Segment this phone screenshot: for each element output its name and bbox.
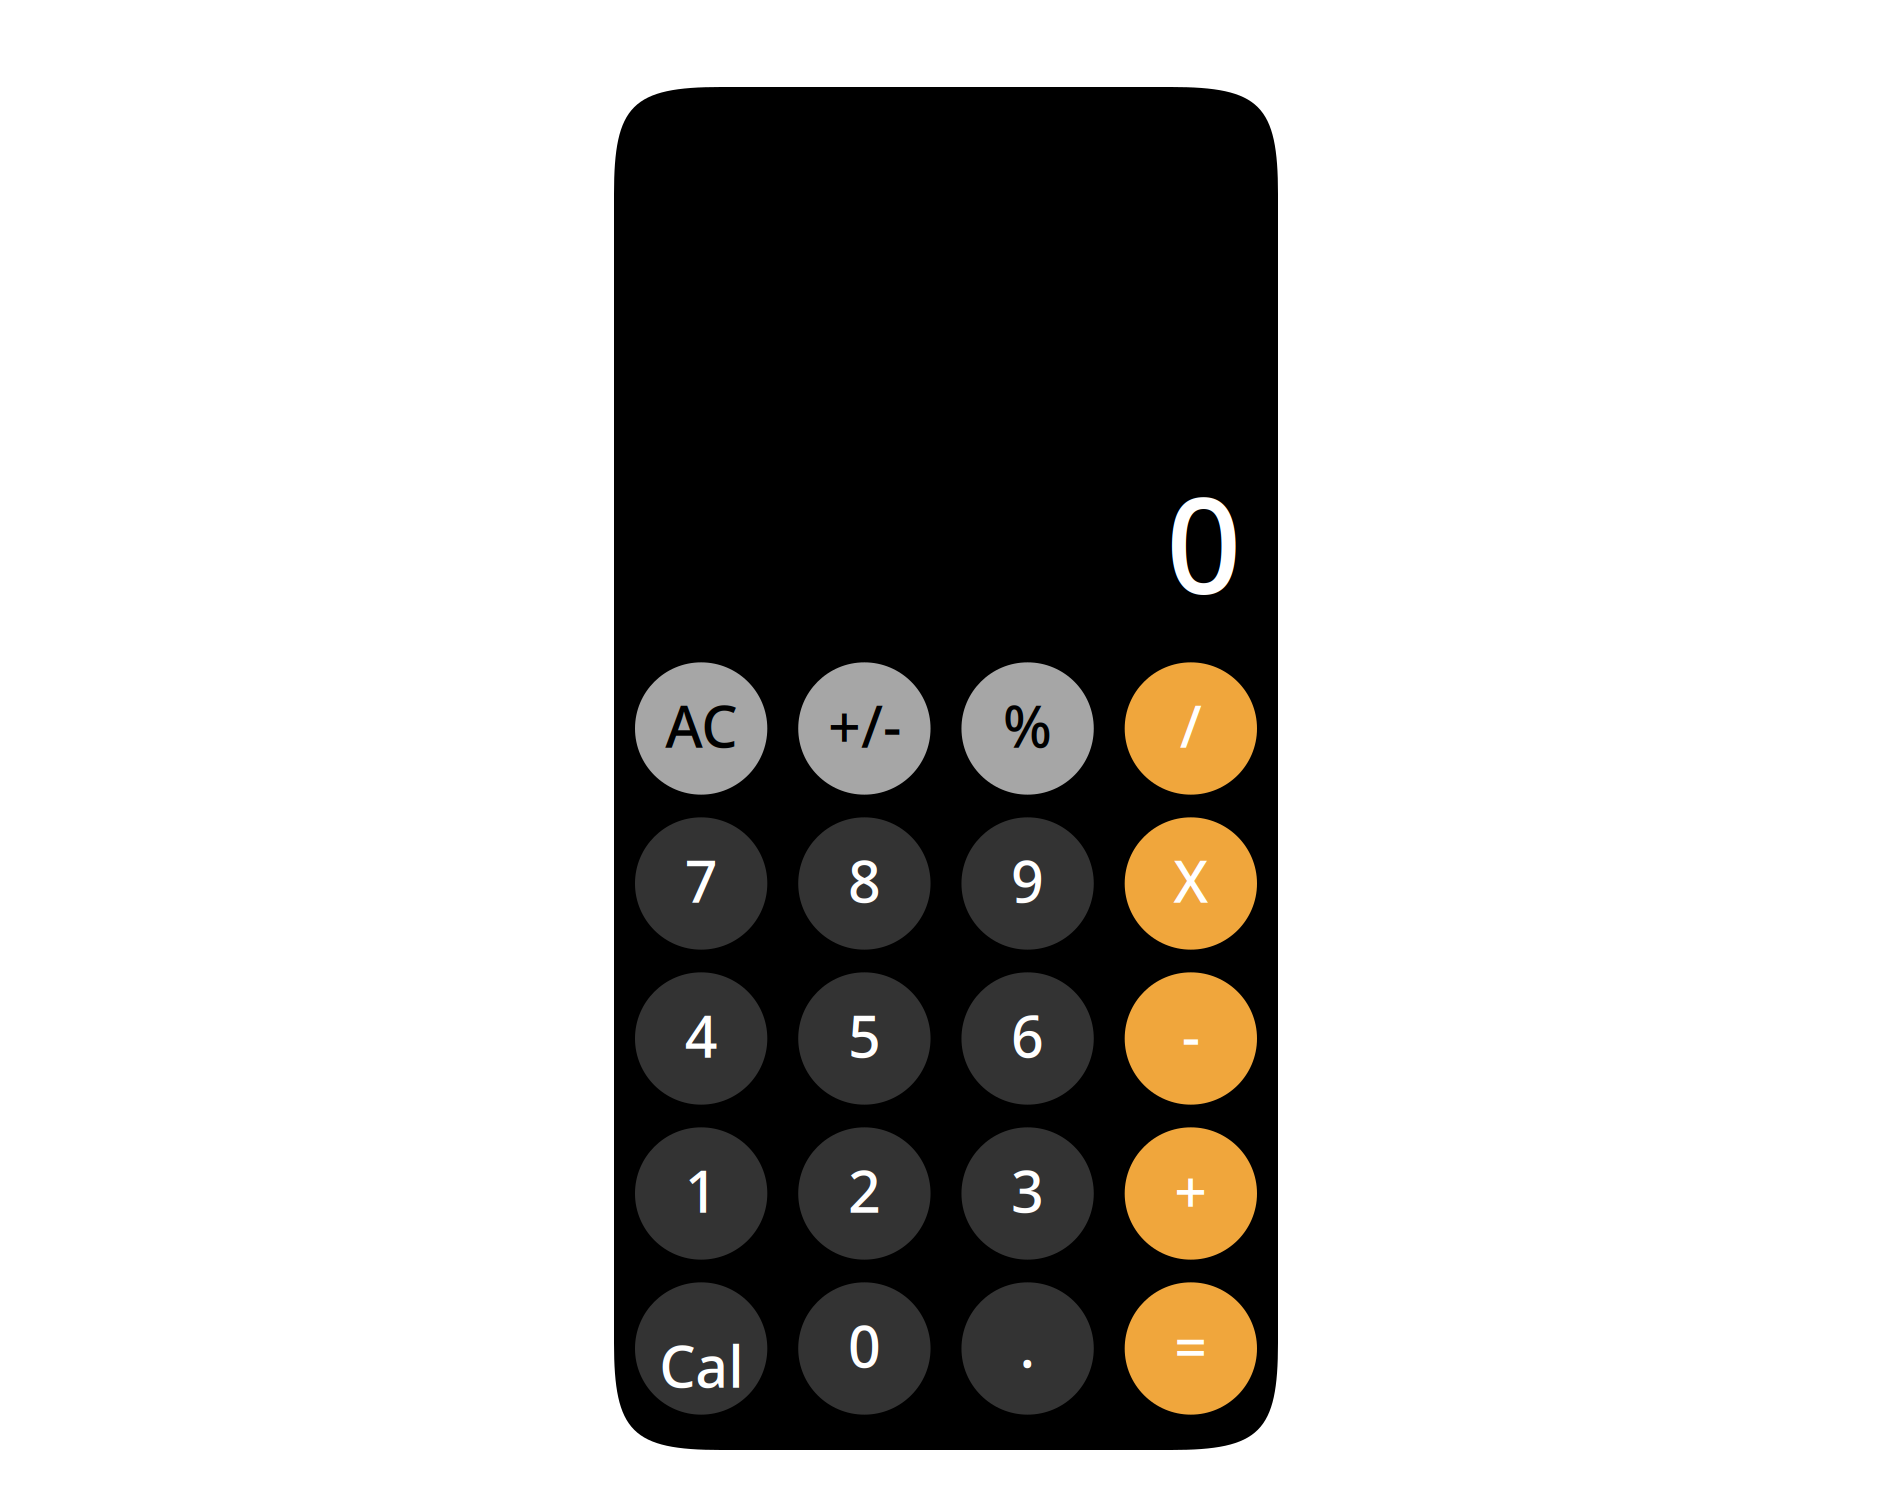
staticText: 3 (1011, 1152, 1044, 1228)
staticText: 6 (1011, 997, 1044, 1073)
button[interactable]: AC (635, 661, 767, 795)
staticText: 2 (848, 1152, 881, 1228)
button[interactable]: 7 (635, 816, 767, 950)
staticText: / (1180, 687, 1202, 763)
staticText: 0 (848, 1307, 881, 1383)
staticText: AC (665, 687, 737, 763)
button[interactable]: % (961, 661, 1094, 795)
button[interactable]: / (1125, 661, 1257, 795)
staticText: 1 (685, 1152, 718, 1228)
staticText: 0 (1166, 455, 1242, 630)
button[interactable]: 8 (798, 816, 930, 950)
button[interactable]: 9 (961, 816, 1094, 950)
button[interactable]: - (1125, 971, 1257, 1105)
staticText: 8 (848, 842, 881, 918)
button[interactable]: 6 (961, 971, 1094, 1105)
button[interactable]: 0 (798, 1281, 930, 1415)
staticText: 4 (685, 997, 718, 1073)
staticText: Cal (659, 1327, 743, 1403)
staticText: +/- (828, 687, 901, 763)
staticText: + (1174, 1152, 1207, 1228)
staticText: % (1003, 687, 1052, 763)
staticText: - (1182, 997, 1200, 1073)
button[interactable]: . (961, 1281, 1094, 1415)
button[interactable]: X (1125, 816, 1257, 950)
button[interactable]: 4 (635, 971, 767, 1105)
staticText: 5 (848, 997, 881, 1073)
button[interactable]: = (1125, 1281, 1257, 1415)
staticText: X (1173, 842, 1208, 918)
staticText: = (1174, 1307, 1207, 1383)
staticText: 9 (1011, 842, 1044, 918)
button[interactable]: Cal (635, 1281, 767, 1415)
button[interactable]: 5 (798, 971, 930, 1105)
button[interactable]: 1 (635, 1126, 767, 1260)
staticText: 7 (685, 842, 718, 918)
button[interactable]: +/- (798, 661, 930, 795)
button[interactable]: 3 (961, 1126, 1094, 1260)
staticText: . (1020, 1307, 1036, 1383)
button[interactable]: + (1125, 1126, 1257, 1260)
button[interactable]: 2 (798, 1126, 930, 1260)
